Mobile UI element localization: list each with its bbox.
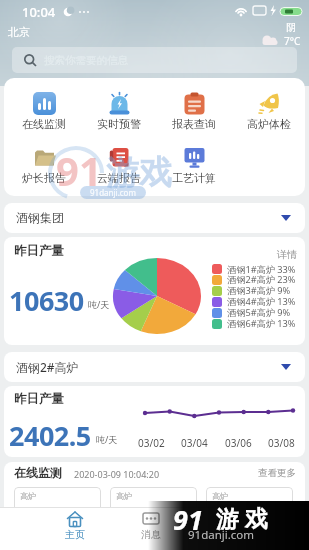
staticText: 吨/天	[96, 433, 118, 445]
staticText: 高炉	[212, 491, 228, 501]
staticText: 昨日产量	[14, 391, 64, 407]
button[interactable]: 高炉	[14, 487, 101, 513]
staticText: 酒钢1#高炉 33%	[227, 263, 296, 276]
button[interactable]: 报表查询	[160, 92, 228, 138]
staticText: 工艺计算	[172, 171, 216, 185]
button[interactable]: 云端报告	[85, 146, 153, 192]
staticText: 云端报告	[97, 171, 141, 185]
staticText: 酒钢3#高炉 9%	[227, 284, 291, 297]
staticText: 高炉	[116, 491, 132, 501]
staticText: 10630	[9, 282, 84, 319]
staticText: 91	[173, 501, 203, 538]
staticText: 酒钢集团	[16, 210, 64, 225]
button[interactable]: 搜索你需要的信息	[12, 47, 297, 73]
staticText: 酒钢4#高炉 13%	[227, 295, 296, 308]
button[interactable]: 高炉	[110, 487, 197, 513]
staticText: 酒钢2#高炉	[16, 359, 79, 375]
staticText: 吨/天	[88, 298, 110, 310]
staticText: 北京	[8, 25, 30, 39]
staticText: 实时预警	[97, 117, 141, 131]
staticText: 7°C	[284, 34, 301, 48]
button[interactable]: 工艺计算	[160, 146, 228, 192]
button[interactable]: 实时预警	[85, 92, 153, 138]
staticText: 酒钢6#高炉 13%	[227, 317, 296, 330]
staticText: 03/06	[225, 436, 252, 450]
staticText: 03/08	[268, 436, 295, 450]
staticText: 高炉体检	[247, 117, 291, 131]
staticText: 03/02	[138, 436, 165, 450]
button[interactable]: 在线监测	[10, 92, 78, 138]
staticText: 91danji.com	[90, 187, 136, 198]
staticText: 在线监测	[14, 465, 62, 480]
staticText: 10:04	[22, 3, 56, 21]
staticText: 搜索你需要的信息	[44, 54, 128, 67]
button[interactable]: 酒钢集团	[4, 203, 305, 233]
staticText: 炉长报告	[22, 171, 66, 185]
button[interactable]: 详情	[277, 248, 297, 261]
button[interactable]: 高炉体检	[235, 92, 303, 138]
staticText: 91danji.com	[188, 527, 255, 543]
staticText: 消息	[141, 528, 161, 541]
staticText: 酒钢5#高炉 9%	[227, 306, 291, 319]
button[interactable]: 酒钢2#高炉	[4, 352, 305, 382]
button[interactable]: 查看更多	[258, 467, 296, 479]
button[interactable]: 炉长报告	[10, 146, 78, 192]
staticText: 2402.5	[9, 417, 91, 454]
staticText: 在线监测	[22, 117, 66, 131]
staticText: 昨日产量	[14, 243, 64, 259]
staticText: 2020-03-09 10:04:20	[74, 468, 160, 480]
staticText: 03/04	[181, 436, 208, 450]
staticText: 报表查询	[172, 117, 216, 131]
button[interactable]: 消息	[133, 509, 169, 550]
staticText: 高炉	[20, 491, 36, 501]
button[interactable]: 主页	[55, 509, 95, 550]
staticText: 91	[56, 143, 102, 197]
button[interactable]: 高炉	[206, 487, 293, 513]
staticText: 阴	[286, 21, 296, 34]
staticText: 主页	[65, 528, 85, 541]
staticText: 游戏	[106, 152, 172, 194]
staticText: 游戏	[213, 505, 271, 534]
staticText: 酒钢2#高炉 23%	[227, 273, 296, 286]
